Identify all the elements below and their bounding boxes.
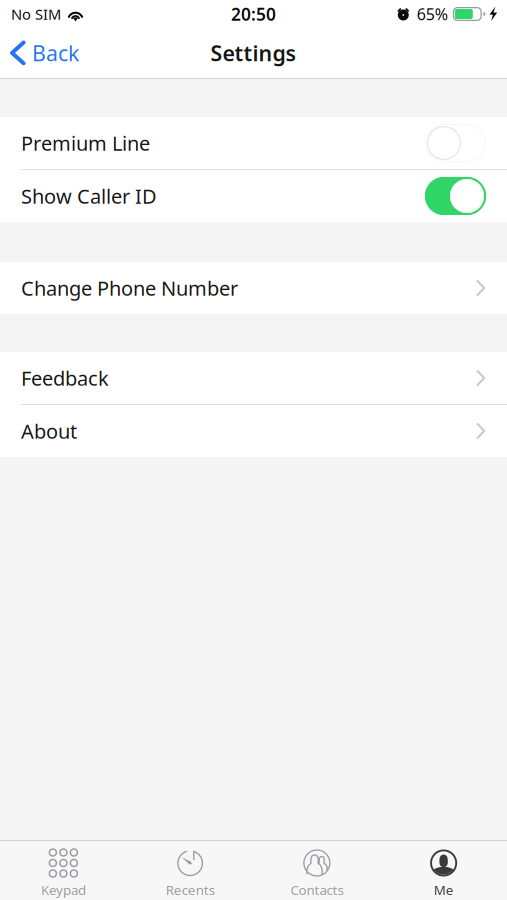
button[interactable]: Me — [380, 841, 507, 900]
staticText: Recents — [166, 881, 215, 899]
staticText: Premium Line — [21, 130, 150, 156]
staticText: Show Caller ID — [21, 183, 157, 209]
staticText: 20:50 — [231, 2, 276, 25]
button[interactable]: Feedback — [0, 352, 507, 404]
staticText: Contacts — [290, 881, 343, 899]
button[interactable]: Recents — [127, 841, 254, 900]
button[interactable]: Show Caller ID — [0, 170, 507, 222]
staticText: Settings — [210, 39, 296, 67]
button[interactable]: Back — [0, 28, 89, 78]
button[interactable]: Keypad — [0, 841, 127, 900]
staticText: No SIM — [11, 4, 61, 24]
staticText: Me — [434, 881, 454, 899]
staticText: Change Phone Number — [21, 275, 238, 301]
staticText: 65% — [417, 3, 448, 25]
button[interactable]: Premium Line — [0, 117, 507, 169]
button[interactable]: About — [0, 405, 507, 457]
staticText: Feedback — [21, 365, 109, 391]
staticText: Keypad — [41, 881, 86, 899]
staticText: About — [21, 418, 77, 444]
button[interactable]: Contacts — [253, 841, 380, 900]
button[interactable]: Change Phone Number — [0, 262, 507, 314]
staticText: Back — [32, 39, 79, 67]
